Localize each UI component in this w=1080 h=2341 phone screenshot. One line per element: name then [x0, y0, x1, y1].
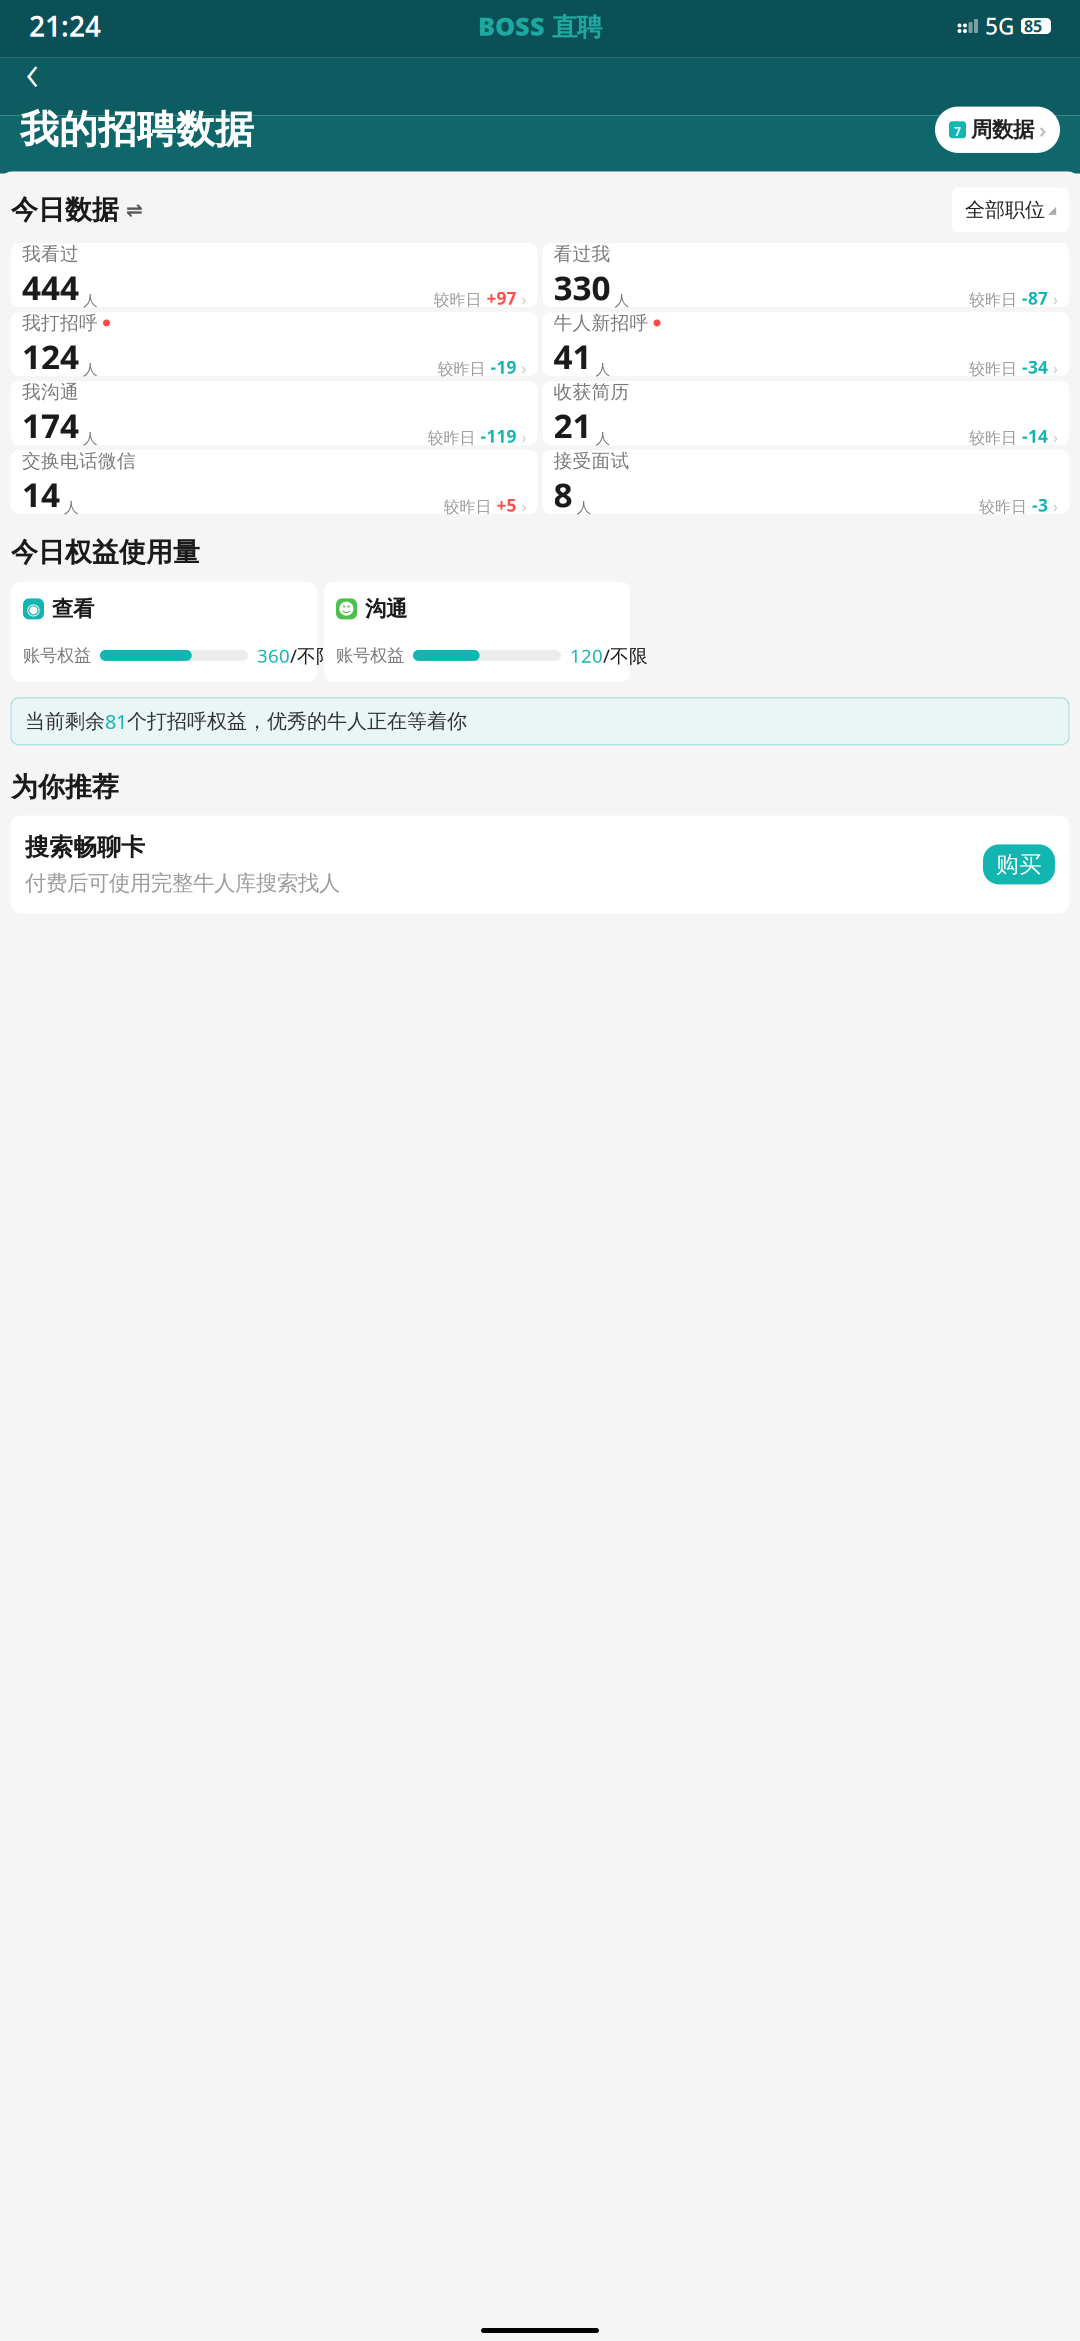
staticText: -3: [1032, 494, 1048, 517]
staticText: ›: [1053, 357, 1058, 379]
staticText: ›: [521, 357, 526, 379]
staticText: -19: [490, 356, 516, 379]
staticText: 付费后可使用完整牛人库搜索找人: [25, 870, 340, 896]
staticText: 看过我: [553, 242, 610, 265]
staticText: 较昨日: [443, 497, 496, 517]
staticText: 85: [1024, 15, 1042, 37]
button[interactable]: 购买: [983, 844, 1055, 884]
staticText: 人: [79, 430, 98, 448]
staticText: BOSS 直聘: [478, 9, 602, 43]
staticText: 81: [105, 708, 127, 735]
staticText: 较昨日: [969, 290, 1022, 310]
staticText: 360: [257, 643, 290, 668]
staticText: 人: [79, 361, 98, 379]
staticText: ⇌: [126, 198, 143, 221]
button[interactable]: 返回: [11, 50, 53, 92]
staticText: ›: [1053, 495, 1058, 517]
staticText: 14: [22, 472, 60, 517]
button[interactable]: 我沟通: [11, 381, 537, 445]
staticText: 今日数据: [11, 193, 119, 226]
staticText: 我看过: [22, 242, 79, 265]
staticText: 购买: [996, 850, 1042, 878]
staticText: ☻: [338, 600, 355, 618]
button[interactable]: ☻: [324, 582, 630, 682]
button[interactable]: 切换排序: [119, 194, 147, 225]
staticText: ›: [521, 495, 526, 517]
staticText: 较昨日: [969, 359, 1022, 379]
staticText: 较昨日: [979, 497, 1032, 517]
staticText: 人: [591, 430, 610, 448]
staticText: 搜索畅聊卡: [25, 833, 145, 862]
staticText: 5G: [985, 11, 1014, 41]
staticText: 全部职位: [965, 197, 1045, 222]
staticText: 个打招呼权益，优秀的牛人正在等着你: [127, 709, 467, 734]
staticText: 较昨日: [437, 359, 490, 379]
staticText: -87: [1022, 287, 1048, 310]
staticText: 174: [22, 403, 79, 448]
staticText: 21: [553, 403, 591, 448]
button[interactable]: 我打招呼: [11, 312, 537, 376]
staticText: 较昨日: [427, 428, 480, 448]
staticText: -119: [480, 425, 516, 448]
staticText: 账号权益: [336, 645, 404, 666]
staticText: ›: [1053, 426, 1058, 448]
staticText: ›: [1039, 116, 1046, 144]
staticText: 当前剩余: [25, 709, 105, 734]
staticText: ›: [521, 288, 526, 310]
button[interactable]: 7: [935, 107, 1060, 153]
button[interactable]: 全部职位: [952, 187, 1069, 232]
staticText: 120: [570, 643, 603, 668]
staticText: 7: [954, 123, 961, 139]
staticText: /不限: [603, 643, 648, 668]
staticText: 今日权益使用量: [11, 536, 200, 569]
button[interactable]: 交换电话微信: [11, 450, 537, 514]
staticText: +97: [486, 287, 516, 310]
staticText: ›: [521, 426, 526, 448]
staticText: 人: [610, 292, 629, 310]
staticText: 41: [553, 334, 591, 379]
staticText: 人: [60, 499, 79, 517]
button[interactable]: 当前剩余: [11, 698, 1069, 745]
button[interactable]: 看过我: [542, 243, 1069, 307]
staticText: 我的招聘数据: [20, 106, 254, 153]
staticText: 查看: [52, 596, 94, 622]
button[interactable]: 收获简历: [542, 381, 1069, 445]
staticText: 21:24: [29, 7, 101, 45]
staticText: 为你推荐: [11, 771, 119, 804]
staticText: 牛人新招呼: [553, 311, 648, 334]
button[interactable]: 我看过: [11, 243, 537, 307]
staticText: 收获简历: [553, 380, 629, 403]
button[interactable]: 牛人新招呼: [542, 312, 1069, 376]
staticText: 444: [22, 265, 79, 310]
staticText: ‹: [25, 37, 38, 105]
staticText: 8: [553, 472, 572, 517]
staticText: 我打招呼: [22, 311, 98, 334]
button[interactable]: ◉: [11, 582, 317, 682]
staticText: -34: [1022, 356, 1048, 379]
staticText: +5: [496, 494, 516, 517]
staticText: 我沟通: [22, 380, 79, 403]
staticText: 周数据: [971, 117, 1034, 143]
staticText: ›: [1053, 288, 1058, 310]
staticText: 接受面试: [553, 449, 629, 472]
staticText: -14: [1022, 425, 1048, 448]
staticText: ◢: [1048, 204, 1056, 216]
staticText: 交换电话微信: [22, 449, 136, 472]
button[interactable]: 接受面试: [542, 450, 1069, 514]
staticText: 沟通: [365, 596, 407, 622]
staticText: 人: [572, 499, 591, 517]
staticText: ◉: [26, 600, 40, 618]
staticText: 账号权益: [23, 645, 91, 666]
staticText: 人: [79, 292, 98, 310]
staticText: 330: [553, 265, 610, 310]
staticText: 124: [22, 334, 79, 379]
staticText: 较昨日: [433, 290, 486, 310]
staticText: 人: [591, 361, 610, 379]
staticText: 较昨日: [969, 428, 1022, 448]
staticText: /不限: [290, 643, 335, 668]
